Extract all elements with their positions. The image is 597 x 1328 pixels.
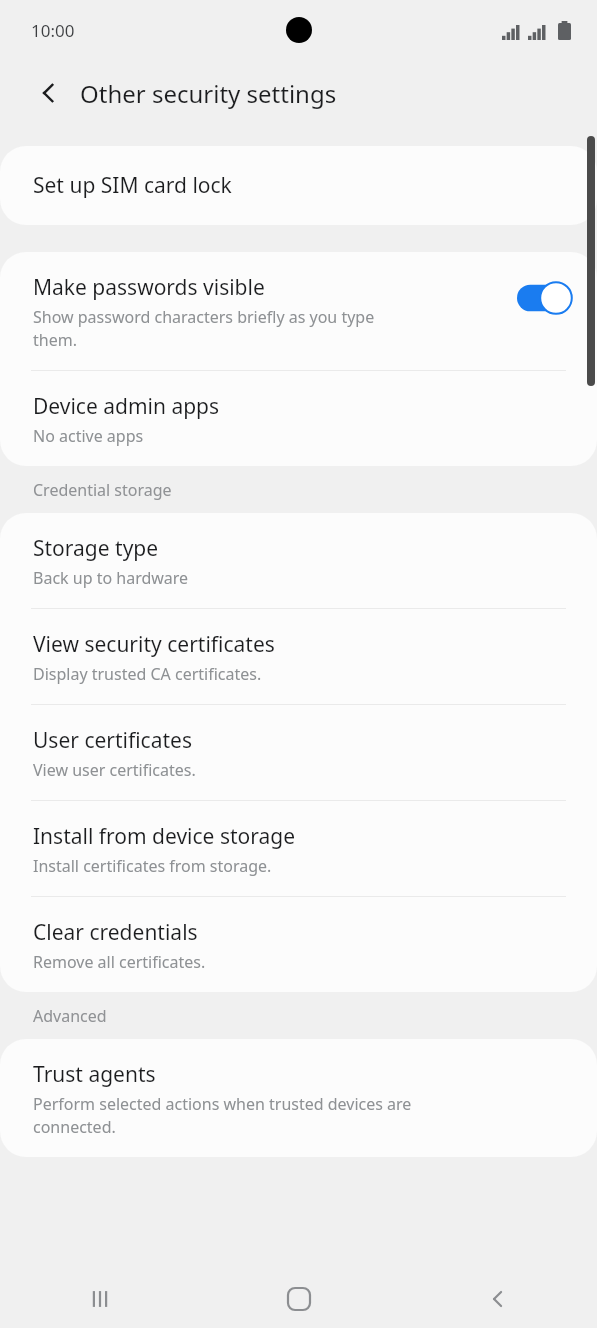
staticText: Install from device storage [33,822,296,851]
button[interactable]: Make passwords visible [517,281,573,315]
staticText: Advanced [33,1005,107,1027]
button[interactable]: Back [398,1270,597,1328]
staticText: Make passwords visible [33,273,265,302]
button[interactable]: Trust agents [0,1039,597,1157]
staticText: View security certificates [33,630,275,659]
button[interactable]: User certificates [0,705,597,800]
button[interactable]: Home [199,1270,398,1328]
staticText: Storage type [33,534,159,563]
staticText: Install certificates from storage. [33,855,272,877]
button[interactable]: Clear credentials [0,897,597,992]
staticText: Remove all certificates. [33,951,206,973]
button[interactable]: Device admin apps [0,371,597,466]
staticText: Trust agents [33,1060,156,1089]
staticText: No active apps [33,425,144,447]
staticText: Display trusted CA certificates. [33,663,262,685]
button[interactable]: View security certificates [0,609,597,704]
button[interactable]: Back [26,71,70,115]
staticText: Show password characters briefly as you … [33,306,375,351]
staticText: User certificates [33,726,192,755]
staticText: Credential storage [33,479,172,501]
staticText: Perform selected actions when trusted de… [33,1093,412,1138]
staticText: Set up SIM card lock [33,171,232,200]
staticText: Other security settings [80,77,337,110]
staticText: Device admin apps [33,392,220,421]
staticText: Back up to hardware [33,567,189,589]
staticText: Clear credentials [33,918,198,947]
button[interactable]: Storage type [0,513,597,608]
staticText: 10:00 [31,19,75,42]
staticText: View user certificates. [33,759,196,781]
button[interactable]: Make passwords visible [0,252,597,370]
button[interactable]: Install from device storage [0,801,597,896]
button[interactable]: Set up SIM card lock [0,146,597,225]
button[interactable]: Recent apps [0,1270,199,1328]
